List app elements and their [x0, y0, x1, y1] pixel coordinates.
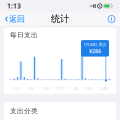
- staticText: ¥286: [89, 48, 101, 55]
- staticText: 1-25: [86, 87, 93, 91]
- staticText: 1-20: [71, 87, 78, 91]
- staticText: 1月24日 周五: [83, 42, 106, 47]
- staticText: 1-1: [14, 87, 19, 91]
- button[interactable]: 返回: [0, 12, 30, 26]
- staticText: 1-15: [56, 87, 63, 91]
- staticText: 1:13: [7, 2, 21, 10]
- staticText: 统计: [51, 13, 69, 25]
- button[interactable]: 说明: [103, 12, 120, 26]
- staticText: 1-10: [42, 87, 49, 91]
- staticText: 1-5: [28, 87, 33, 91]
- staticText: 支出分类: [10, 107, 38, 115]
- staticText: 返回: [9, 14, 25, 24]
- staticText: i: [110, 15, 112, 23]
- staticText: 每日支出: [10, 31, 38, 39]
- staticText: 1-29: [100, 87, 107, 91]
